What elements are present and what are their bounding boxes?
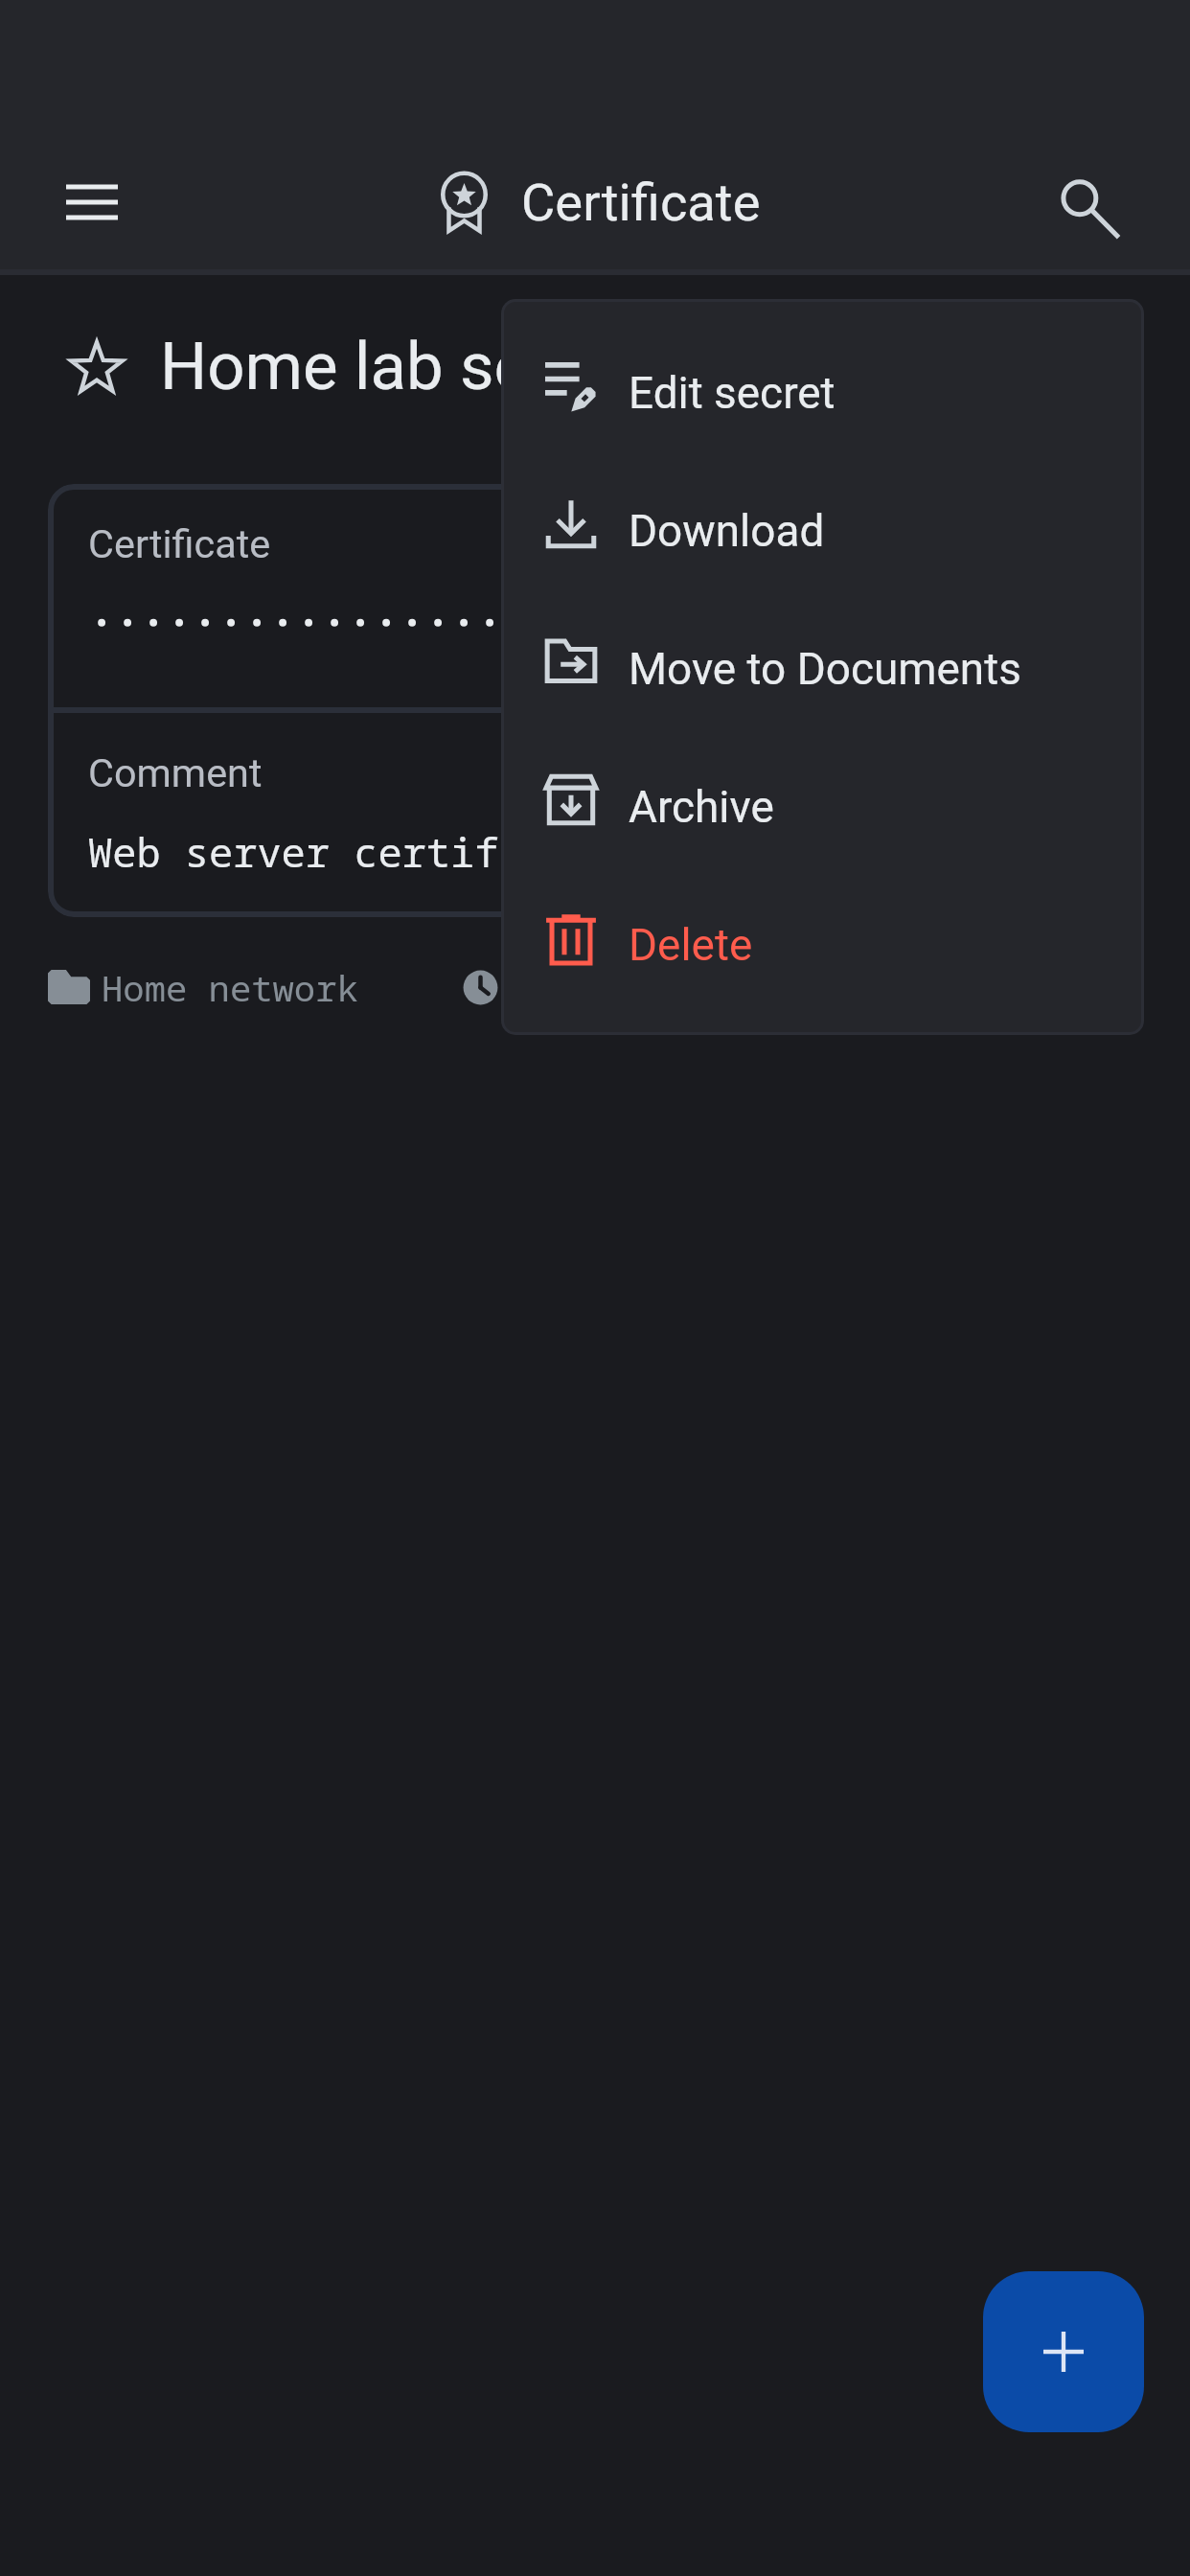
staticText: Move to Documents [629, 643, 1021, 695]
button[interactable]: Download [501, 454, 1144, 592]
staticText: Home network [102, 963, 358, 1012]
staticText: Certificate [521, 172, 761, 234]
staticText: Certificate [88, 521, 271, 568]
button[interactable]: Open navigation menu [26, 136, 158, 268]
button[interactable]: Move to Documents [501, 592, 1144, 730]
button[interactable]: Delete [501, 868, 1144, 1006]
button[interactable]: Certificate [48, 484, 1142, 707]
button[interactable]: Toggle favourite [36, 306, 157, 426]
staticText: Delete [629, 919, 753, 971]
staticText: Edit secret [629, 367, 835, 419]
staticText: Download [629, 505, 825, 557]
staticText: Web server certificate for the home lab [88, 824, 1030, 879]
button[interactable]: Archive [501, 730, 1144, 868]
button[interactable]: Comment [48, 713, 1142, 917]
button[interactable]: Add new secret [983, 2271, 1144, 2432]
staticText: Home lab server [160, 328, 642, 405]
button[interactable]: Edit secret [501, 316, 1144, 454]
button[interactable]: Search [1019, 136, 1152, 268]
staticText: Archive [629, 781, 774, 833]
staticText: Comment [88, 750, 263, 797]
